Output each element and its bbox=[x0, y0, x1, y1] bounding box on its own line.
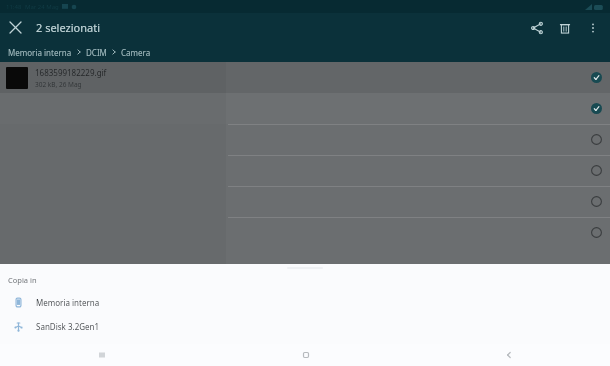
staticText: 1683599182229.gif bbox=[35, 67, 107, 78]
staticText: Mar 24 Mag bbox=[25, 3, 59, 11]
staticText: DCIM bbox=[86, 47, 107, 58]
button[interactable] bbox=[0, 217, 610, 248]
staticText: 302 kB, 26 Mag bbox=[35, 80, 82, 89]
button[interactable]: 1683599182229.gif bbox=[0, 62, 610, 93]
staticText: SanDisk 3.2Gen1 bbox=[36, 321, 100, 332]
button[interactable] bbox=[0, 186, 610, 217]
staticText: Camera bbox=[121, 47, 151, 58]
button[interactable]: Camera bbox=[121, 47, 151, 58]
staticText: 2 selezionati bbox=[36, 20, 100, 35]
button[interactable]: Chiudi bbox=[0, 13, 30, 42]
button[interactable]: DCIM bbox=[86, 47, 107, 58]
staticText: Copia in bbox=[8, 275, 37, 285]
button[interactable]: Elimina bbox=[551, 14, 579, 42]
button[interactable]: SanDisk 3.2Gen1 bbox=[0, 314, 610, 338]
button[interactable]: Home bbox=[204, 344, 407, 366]
button[interactable]: Memoria interna bbox=[0, 290, 610, 314]
button[interactable]: Condividi bbox=[523, 14, 551, 42]
button[interactable] bbox=[0, 93, 610, 124]
staticText: Memoria interna bbox=[8, 47, 72, 58]
button[interactable]: Recenti bbox=[0, 344, 204, 366]
button[interactable]: Altre opzioni bbox=[579, 14, 607, 42]
button[interactable] bbox=[0, 155, 610, 186]
staticText: Memoria interna bbox=[36, 297, 100, 308]
staticText: 11:48 bbox=[6, 3, 22, 11]
button[interactable] bbox=[0, 124, 610, 155]
button[interactable]: Memoria interna bbox=[8, 47, 72, 58]
